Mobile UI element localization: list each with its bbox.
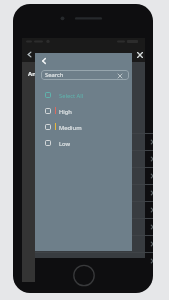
button[interactable]: Close xyxy=(134,49,146,61)
button[interactable]: Low xyxy=(35,135,132,151)
button[interactable]: Select All xyxy=(35,87,132,103)
staticText: An xyxy=(28,70,37,78)
button[interactable]: Medium xyxy=(35,119,132,135)
button[interactable]: Clear search xyxy=(116,72,123,79)
staticText: Low xyxy=(59,140,70,148)
staticText: Search xyxy=(45,71,64,79)
button[interactable]: Back xyxy=(23,48,36,61)
button[interactable] xyxy=(35,150,153,167)
staticText: Medium xyxy=(59,124,82,132)
button[interactable]: Back xyxy=(37,54,50,67)
button[interactable] xyxy=(35,218,153,235)
button[interactable]: High xyxy=(35,103,132,119)
button[interactable] xyxy=(35,252,153,269)
button[interactable]: Search xyxy=(41,70,129,80)
button[interactable] xyxy=(35,167,153,184)
button[interactable] xyxy=(35,201,153,218)
button[interactable] xyxy=(35,184,153,201)
staticText: Select All xyxy=(59,92,84,100)
button[interactable] xyxy=(35,235,153,252)
staticText: High xyxy=(59,108,72,116)
button[interactable] xyxy=(35,133,153,150)
